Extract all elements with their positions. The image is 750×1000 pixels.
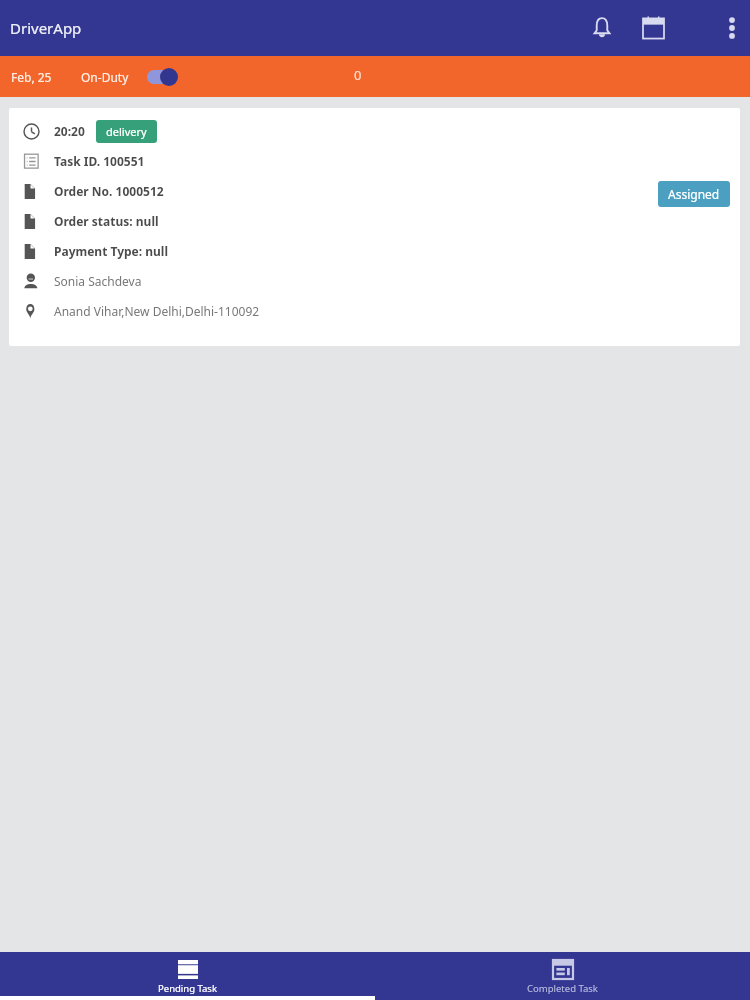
- staticText: 0: [354, 66, 362, 84]
- staticText: Task ID. 100551: [54, 153, 145, 169]
- staticText: Payment Type: null: [54, 243, 169, 259]
- staticText: Order status: null: [54, 213, 159, 229]
- button[interactable]: Completed Task: [375, 952, 750, 1000]
- staticText: delivery: [106, 124, 147, 139]
- button[interactable]: Notifications: [579, 5, 625, 51]
- staticText: Order No. 1000512: [54, 183, 164, 199]
- staticText: Pending Task: [158, 982, 217, 995]
- staticText: Assigned: [668, 186, 720, 202]
- button[interactable]: [142, 65, 182, 89]
- button[interactable]: 20:20: [9, 108, 740, 346]
- button[interactable]: Calendar: [630, 5, 676, 51]
- button[interactable]: delivery: [96, 120, 157, 143]
- staticText: DriverApp: [10, 18, 82, 38]
- staticText: 20:20: [54, 123, 85, 139]
- staticText: Anand Vihar,New Delhi,Delhi-110092: [54, 303, 260, 319]
- staticText: Feb, 25: [11, 69, 52, 85]
- button[interactable]: More options: [714, 5, 750, 51]
- staticText: Sonia Sachdeva: [54, 273, 142, 289]
- button[interactable]: Pending Task: [0, 952, 375, 1000]
- staticText: Completed Task: [527, 982, 598, 995]
- staticText: On-Duty: [81, 69, 129, 85]
- button[interactable]: Assigned: [658, 181, 730, 207]
